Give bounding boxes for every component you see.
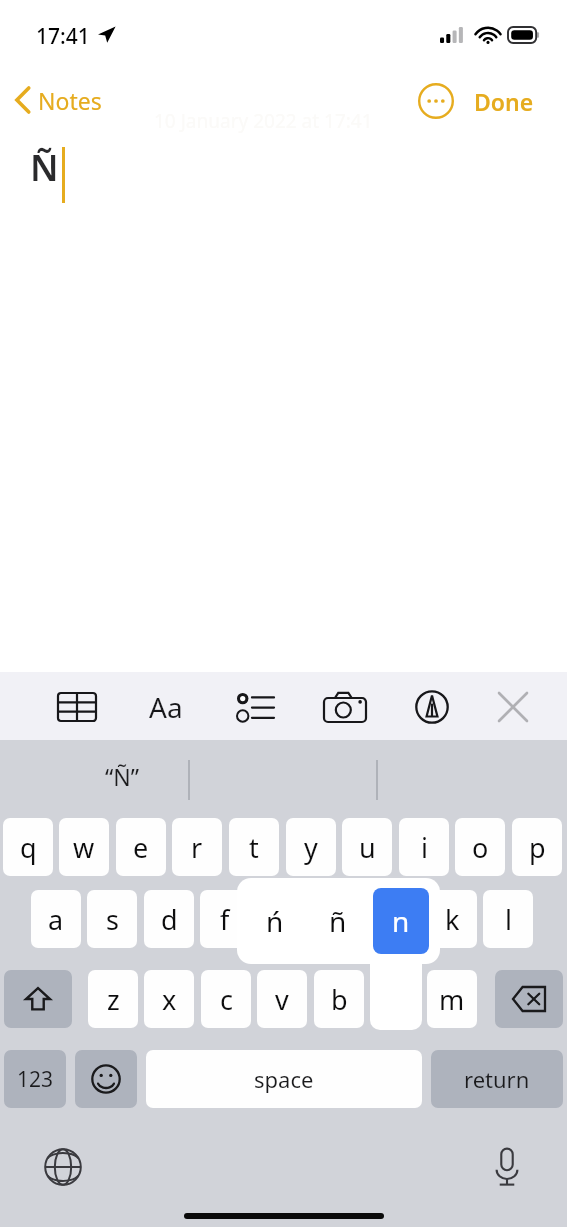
- button[interactable]: ń: [247, 894, 303, 948]
- staticText: e: [133, 829, 149, 866]
- button[interactable]: b: [314, 970, 364, 1028]
- button[interactable]: w: [59, 818, 109, 876]
- button[interactable]: 123: [4, 1050, 66, 1108]
- staticText: a: [48, 901, 64, 938]
- staticText: i: [421, 829, 428, 866]
- button[interactable]: Emoji: [75, 1050, 137, 1108]
- button[interactable]: More options: [414, 79, 458, 123]
- button[interactable]: Markup: [405, 684, 459, 730]
- button[interactable]: t: [229, 818, 279, 876]
- staticText: space: [254, 1064, 314, 1094]
- button[interactable]: Notes: [6, 78, 126, 122]
- button[interactable]: x: [144, 970, 194, 1028]
- staticText: j: [392, 901, 399, 938]
- button[interactable]: e: [116, 818, 166, 876]
- staticText: r: [191, 829, 203, 866]
- staticText: Ñ: [30, 143, 59, 192]
- staticText: 17:41: [36, 22, 90, 51]
- button[interactable]: Shift: [4, 970, 72, 1028]
- staticText: Done: [474, 86, 534, 117]
- button[interactable]: “Ñ”: [56, 750, 188, 802]
- button[interactable]: c: [201, 970, 251, 1028]
- button[interactable]: j: [370, 890, 420, 948]
- button[interactable]: Dictation: [480, 1140, 534, 1194]
- staticText: w: [73, 829, 95, 866]
- button[interactable]: Done: [474, 79, 560, 123]
- staticText: b: [331, 981, 348, 1018]
- button[interactable]: p: [512, 818, 562, 876]
- staticText: o: [472, 829, 489, 866]
- staticText: z: [107, 981, 120, 1018]
- button[interactable]: Close: [486, 684, 540, 730]
- staticText: return: [464, 1064, 530, 1094]
- button[interactable]: Change keyboard: [36, 1140, 90, 1194]
- staticText: u: [359, 829, 376, 866]
- button[interactable]: Backspace: [495, 970, 563, 1028]
- button[interactable]: y: [286, 818, 336, 876]
- button[interactable]: i: [399, 818, 449, 876]
- button[interactable]: s: [87, 890, 137, 948]
- staticText: q: [20, 829, 37, 866]
- staticText: x: [162, 981, 177, 1018]
- staticText: m: [439, 981, 465, 1018]
- button[interactable]: r: [172, 818, 222, 876]
- button[interactable]: space: [146, 1050, 422, 1108]
- button[interactable]: g: [257, 890, 307, 948]
- staticText: p: [529, 829, 546, 866]
- button[interactable]: l: [483, 890, 533, 948]
- button[interactable]: f: [200, 890, 250, 948]
- staticText: “Ñ”: [105, 761, 139, 792]
- staticText: Notes: [38, 85, 102, 116]
- button[interactable]: d: [144, 890, 194, 948]
- button[interactable]: ñ: [310, 894, 366, 948]
- button[interactable]: n: [373, 888, 429, 954]
- button[interactable]: Camera: [318, 684, 372, 730]
- staticText: 123: [17, 1065, 54, 1094]
- staticText: n: [392, 902, 410, 940]
- button[interactable]: Aa: [139, 684, 193, 730]
- button[interactable]: h: [314, 890, 364, 948]
- staticText: l: [505, 901, 512, 938]
- staticText: s: [106, 901, 119, 938]
- staticText: g: [274, 901, 291, 938]
- button[interactable]: Table: [50, 684, 104, 730]
- button[interactable]: v: [257, 970, 307, 1028]
- staticText: v: [275, 981, 289, 1018]
- staticText: k: [445, 901, 460, 938]
- button[interactable]: u: [342, 818, 392, 876]
- staticText: t: [249, 829, 259, 866]
- staticText: h: [331, 901, 348, 938]
- button[interactable]: q: [3, 818, 53, 876]
- staticText: d: [161, 901, 178, 938]
- button[interactable]: k: [427, 890, 477, 948]
- button[interactable]: return: [431, 1050, 563, 1108]
- button[interactable]: Checklist: [228, 684, 282, 730]
- staticText: c: [220, 981, 233, 1018]
- button[interactable]: z: [88, 970, 138, 1028]
- button[interactable]: o: [455, 818, 505, 876]
- staticText: y: [304, 829, 318, 866]
- staticText: ń: [266, 902, 284, 940]
- button[interactable]: m: [427, 970, 477, 1028]
- button[interactable]: a: [31, 890, 81, 948]
- staticText: f: [220, 901, 230, 938]
- staticText: Aa: [149, 688, 183, 726]
- staticText: ñ: [329, 902, 347, 940]
